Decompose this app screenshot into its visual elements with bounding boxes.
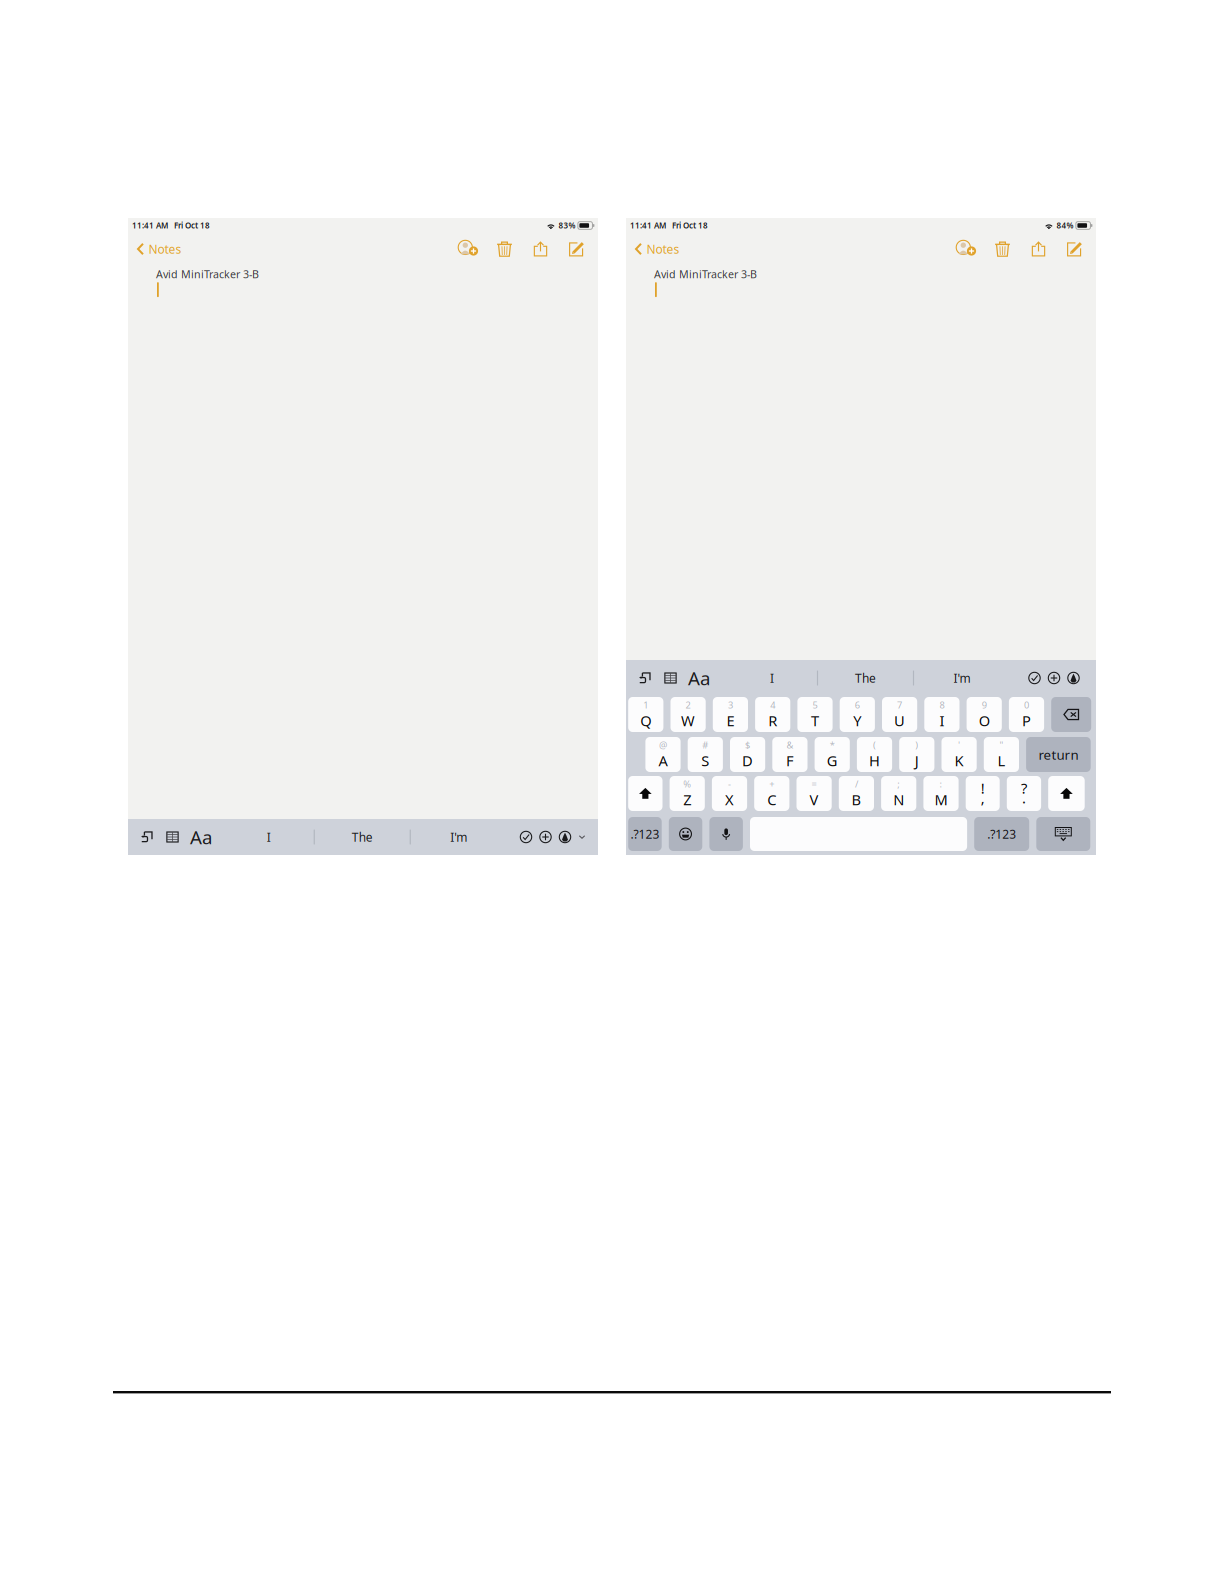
button[interactable]: +	[754, 776, 789, 811]
staticText: T	[811, 711, 819, 730]
staticText: Fri Oct 18	[672, 220, 708, 231]
button[interactable]: *	[815, 737, 850, 772]
staticText: -	[728, 778, 731, 790]
button[interactable]: (	[857, 737, 892, 772]
staticText: .?123	[630, 826, 659, 842]
button[interactable]: Hide Toolbar	[576, 820, 587, 854]
button[interactable]: Add People	[453, 236, 483, 262]
button[interactable]: Undo	[637, 663, 654, 693]
staticText: K	[955, 751, 964, 770]
button[interactable]: &	[772, 737, 807, 772]
button[interactable]: I	[727, 661, 817, 695]
button[interactable]: Checklist	[517, 822, 534, 852]
button[interactable]: @	[645, 737, 681, 772]
button[interactable]: 0	[1009, 697, 1044, 732]
staticText: Notes	[646, 241, 679, 257]
button[interactable]: Table	[663, 663, 678, 693]
button[interactable]: 2	[670, 697, 706, 732]
button[interactable]: 6	[840, 697, 875, 732]
button[interactable]: Delete	[1051, 697, 1091, 732]
button[interactable]: !	[966, 776, 1000, 811]
button[interactable]: .?123	[628, 817, 662, 851]
button[interactable]: Dismiss Keyboard	[1036, 817, 1090, 851]
staticText: The	[855, 670, 876, 686]
staticText: +	[769, 778, 774, 790]
button[interactable]: Notes	[128, 236, 189, 262]
staticText: 0	[1024, 699, 1029, 711]
button[interactable]: =	[796, 776, 832, 811]
button[interactable]: Compose	[1061, 236, 1087, 262]
button[interactable]: Table	[165, 822, 180, 852]
button[interactable]: Delete	[491, 236, 517, 262]
staticText: 8	[939, 699, 944, 711]
staticText: C	[767, 790, 776, 809]
button[interactable]: '	[941, 737, 977, 772]
staticText: Avid MiniTracker 3-B	[654, 267, 757, 281]
staticText: /	[855, 778, 858, 790]
button[interactable]: Emoji	[669, 817, 702, 851]
staticText: *	[830, 739, 835, 751]
button[interactable]: Add People	[951, 236, 981, 262]
button[interactable]: ;	[881, 776, 916, 811]
staticText: Aa	[688, 666, 710, 690]
staticText: B	[851, 790, 861, 809]
button[interactable]: $	[730, 737, 765, 772]
staticText: P	[1022, 711, 1031, 730]
button[interactable]: Insert	[537, 822, 554, 852]
staticText: @	[659, 739, 667, 751]
button[interactable]: Compose	[563, 236, 589, 262]
button[interactable]: I'm	[411, 820, 507, 854]
staticText: 4	[770, 699, 775, 711]
button[interactable]: ?	[1007, 776, 1041, 811]
staticText: .	[1022, 788, 1026, 808]
button[interactable]: Notes	[626, 236, 687, 262]
staticText: 1	[643, 699, 648, 711]
button[interactable]: Dictate	[709, 817, 743, 851]
button[interactable]: I	[224, 820, 314, 854]
button[interactable]: Shift	[628, 776, 662, 811]
staticText: J	[915, 751, 919, 770]
button[interactable]: "	[984, 737, 1019, 772]
button[interactable]: return	[1026, 737, 1091, 772]
button[interactable]: #	[688, 737, 723, 772]
button[interactable]: .?123	[974, 817, 1029, 851]
button[interactable]: 7	[882, 697, 917, 732]
staticText: Y	[853, 711, 861, 730]
button[interactable]: /	[839, 776, 874, 811]
button[interactable]: Undo	[139, 822, 156, 852]
staticText: ,	[981, 788, 985, 808]
staticText: 6	[855, 699, 860, 711]
staticText: L	[997, 751, 1005, 770]
button[interactable]: The	[315, 820, 410, 854]
button[interactable]: Shift	[1048, 776, 1085, 811]
button[interactable]: :	[923, 776, 959, 811]
staticText: $	[745, 739, 750, 751]
staticText: E	[726, 711, 734, 730]
button[interactable]: %	[670, 776, 705, 811]
button[interactable]: Insert	[1045, 663, 1062, 693]
button[interactable]: 5	[797, 697, 833, 732]
button[interactable]: Markup	[556, 822, 573, 852]
staticText: O	[979, 711, 990, 730]
button[interactable]: I'm	[914, 661, 1010, 695]
button[interactable]: 8	[924, 697, 959, 732]
button[interactable]: 4	[755, 697, 790, 732]
button[interactable]: Share	[1025, 236, 1051, 262]
button[interactable]: The	[818, 661, 913, 695]
button[interactable]: 9	[967, 697, 1002, 732]
button[interactable]: Share	[527, 236, 553, 262]
staticText: return	[1038, 746, 1078, 763]
button[interactable]: Markup	[1065, 663, 1082, 693]
button[interactable]: Delete	[989, 236, 1015, 262]
staticText: I'm	[450, 829, 467, 845]
button[interactable]: -	[712, 776, 747, 811]
button[interactable]: Aa	[687, 663, 711, 693]
button[interactable]: 1	[628, 697, 663, 732]
staticText: '	[958, 739, 960, 751]
button[interactable]: Aa	[189, 822, 213, 852]
button[interactable]: 3	[713, 697, 748, 732]
staticText: D	[742, 751, 753, 770]
button[interactable]: )	[899, 737, 934, 772]
button[interactable]: Checklist	[1026, 663, 1043, 693]
